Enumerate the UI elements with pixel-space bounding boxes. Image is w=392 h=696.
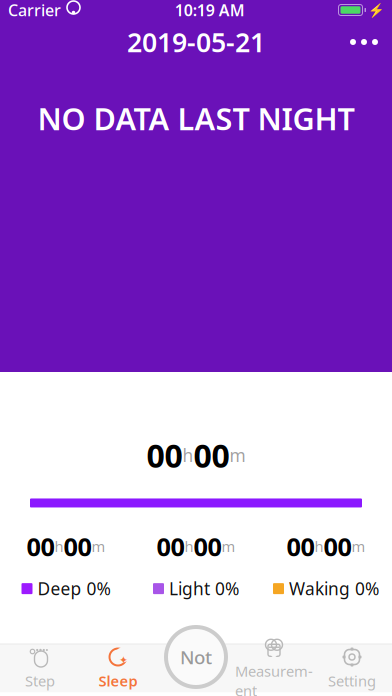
- staticText: 00: [323, 529, 351, 563]
- staticText: m: [229, 444, 245, 467]
- staticText: 10:19 AM: [175, 0, 245, 21]
- staticText: 00: [146, 434, 182, 476]
- staticText: 00: [26, 529, 54, 563]
- staticText: NO DATA LAST NIGHT: [37, 98, 354, 139]
- staticText: 2019-05-21: [127, 24, 265, 60]
- staticText: m: [221, 537, 235, 556]
- staticText: h: [314, 537, 323, 556]
- button[interactable]: ✦: [79, 644, 157, 692]
- staticText: Deep 0%: [37, 577, 110, 600]
- staticText: Setting: [328, 671, 376, 690]
- staticText: Measurement: [235, 661, 313, 696]
- staticText: 00: [193, 529, 221, 563]
- staticText: 00: [193, 434, 229, 476]
- staticText: Carrier: [8, 0, 61, 21]
- staticText: Sleep: [98, 671, 137, 690]
- staticText: 00: [63, 529, 91, 563]
- button[interactable]: Step: [1, 644, 79, 692]
- button[interactable]: Measurement: [235, 644, 313, 692]
- staticText: 00: [286, 529, 314, 563]
- staticText: ⚡: [368, 2, 385, 18]
- staticText: Light 0%: [169, 577, 239, 600]
- staticText: h: [54, 537, 63, 556]
- staticText: m: [91, 537, 105, 556]
- button[interactable]: Notification: [163, 624, 229, 690]
- staticText: Waking 0%: [289, 577, 379, 600]
- button[interactable]: More options: [336, 25, 392, 59]
- staticText: Not: [180, 645, 212, 669]
- staticText: m: [351, 537, 365, 556]
- staticText: h: [184, 537, 193, 556]
- staticText: Step: [25, 671, 55, 690]
- staticText: ✦: [119, 654, 128, 666]
- button[interactable]: Setting: [313, 644, 391, 692]
- staticText: 00: [156, 529, 184, 563]
- staticText: h: [182, 444, 193, 467]
